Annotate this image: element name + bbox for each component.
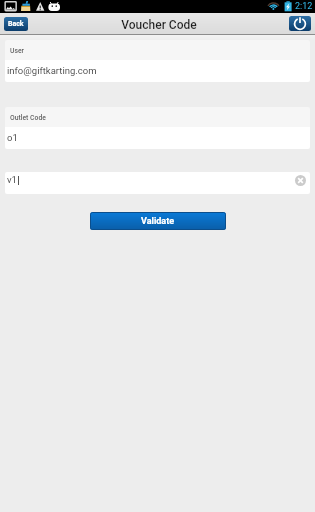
staticText: o1	[7, 132, 18, 143]
button[interactable]: Clear text	[292, 172, 308, 188]
staticText: Outlet Code	[10, 114, 46, 122]
staticText: v1	[7, 174, 17, 185]
staticText: User	[10, 47, 24, 55]
button[interactable]: info@giftkarting.com	[5, 60, 310, 82]
staticText: Validate	[141, 216, 175, 227]
staticText: 2:12	[295, 1, 313, 12]
button[interactable]: v1	[5, 172, 310, 194]
button[interactable]: Back	[4, 17, 28, 31]
button[interactable]: Power	[289, 16, 311, 31]
button[interactable]: o1	[5, 127, 310, 149]
button[interactable]: Validate	[90, 212, 226, 230]
staticText: Voucher Code	[121, 18, 197, 32]
staticText: Back	[8, 20, 24, 28]
staticText: info@giftkarting.com	[7, 65, 97, 76]
